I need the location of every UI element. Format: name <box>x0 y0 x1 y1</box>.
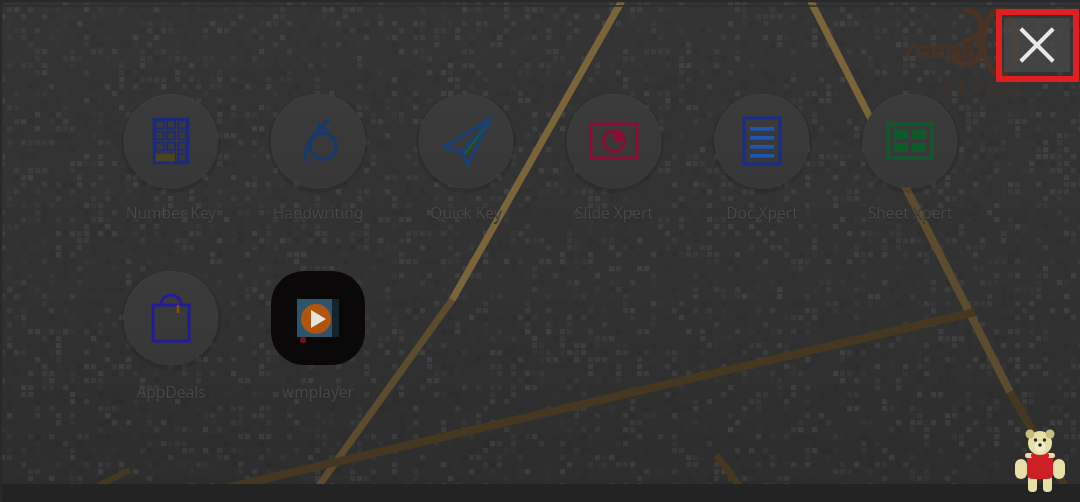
button[interactable]: Handwriting <box>260 83 376 241</box>
button[interactable]: Quick Key <box>408 83 524 241</box>
button[interactable]: AppDeals <box>113 260 229 418</box>
button[interactable]: Sheet Xpert <box>852 83 968 241</box>
button[interactable]: Doc Xpert <box>704 83 820 241</box>
button[interactable]: Slide Xpert <box>556 83 672 241</box>
button[interactable]: wmplayer <box>260 260 376 418</box>
button[interactable]: Number Key <box>113 83 229 241</box>
button[interactable]: Close <box>1004 18 1070 72</box>
